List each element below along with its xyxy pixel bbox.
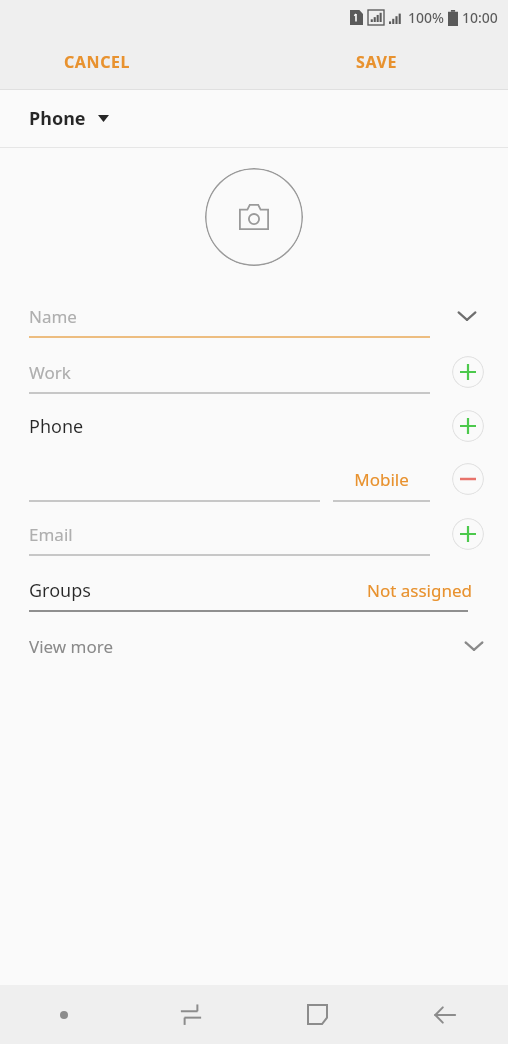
button[interactable]: SAVE	[344, 43, 410, 81]
button[interactable]: View more	[0, 618, 508, 674]
staticText: 10:00	[462, 8, 498, 27]
button[interactable]: Remove phone number	[452, 463, 484, 495]
staticText: Groups	[29, 578, 91, 603]
button[interactable]: Back	[381, 985, 508, 1044]
staticText: Work	[29, 361, 71, 384]
staticText: Phone	[29, 414, 84, 439]
button[interactable]: Recent apps	[127, 985, 254, 1044]
button[interactable]: Home	[254, 985, 381, 1044]
button[interactable]: Add phone number	[452, 410, 484, 442]
staticText: 100%	[408, 8, 444, 27]
button[interactable]: Phone	[0, 90, 508, 147]
staticText: CANCEL	[64, 51, 131, 73]
button[interactable]: Name	[0, 290, 420, 342]
staticText: View more	[29, 635, 114, 658]
staticText: Phone	[29, 106, 86, 131]
button[interactable]: Mobile	[333, 457, 430, 501]
button[interactable]: Add organization	[452, 356, 484, 388]
staticText: Mobile	[354, 468, 409, 491]
button[interactable]: Add photo	[205, 168, 303, 266]
button[interactable]: Work	[0, 346, 420, 398]
staticText: Name	[29, 305, 77, 328]
staticText: SAVE	[356, 51, 398, 73]
button[interactable]: CANCEL	[52, 43, 143, 81]
button[interactable]: Phone number	[0, 455, 300, 503]
staticText: Email	[29, 523, 73, 546]
button[interactable]: Notifications	[0, 985, 127, 1044]
button[interactable]: Expand name	[450, 299, 484, 333]
staticText: Not assigned	[367, 579, 472, 602]
button[interactable]: Groups	[0, 562, 508, 618]
button[interactable]: Email	[0, 508, 420, 560]
button[interactable]: Add email	[452, 518, 484, 550]
